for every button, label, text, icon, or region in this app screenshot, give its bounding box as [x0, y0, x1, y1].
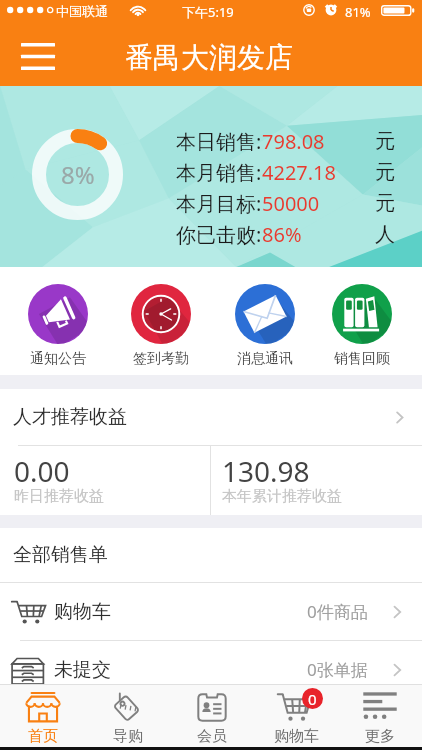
staticText: 元 — [375, 160, 395, 185]
staticText: 全部销售单 — [13, 543, 108, 567]
button[interactable]: 首页 — [0, 685, 85, 747]
staticText: 8% — [61, 158, 95, 191]
staticText: 番禺大润发店 — [125, 40, 293, 75]
staticText: 50000 — [262, 190, 320, 217]
button[interactable]: 销售回顾 — [318, 284, 406, 368]
staticText: 本日销售: — [176, 128, 262, 155]
button[interactable]: 更多 — [338, 685, 422, 747]
staticText: 本月销售: — [176, 159, 262, 186]
staticText: 本年累计推荐收益 — [222, 487, 342, 506]
staticText: 0件商品 — [307, 600, 368, 623]
staticText: 本月目标: — [176, 190, 262, 217]
button[interactable]: 导购 — [85, 685, 170, 747]
staticText: 首页 — [28, 727, 58, 746]
staticText: 消息通讯 — [237, 350, 293, 368]
button[interactable]: 购物车 — [0, 583, 422, 640]
staticText: 元 — [375, 191, 395, 216]
staticText: 798.08 — [262, 128, 325, 155]
staticText: 更多 — [365, 727, 395, 746]
staticText: 下午5:19 — [182, 3, 234, 21]
staticText: 购物车 — [274, 727, 319, 746]
button[interactable]: Menu — [3, 26, 73, 80]
staticText: 元 — [375, 129, 395, 154]
staticText: 昨日推荐收益 — [14, 487, 104, 506]
staticText: 通知公告 — [30, 350, 86, 368]
button[interactable]: 签到考勤 — [117, 284, 205, 368]
staticText: 销售回顾 — [334, 350, 390, 368]
staticText: 你已击败: — [176, 221, 262, 248]
button[interactable]: 通知公告 — [14, 284, 102, 368]
staticText: 导购 — [113, 727, 143, 746]
staticText: 人才推荐收益 — [13, 405, 127, 429]
staticText: 81% — [345, 3, 371, 21]
button[interactable]: 未提交 — [0, 641, 422, 698]
staticText: 未提交 — [54, 658, 111, 682]
staticText: 86% — [262, 221, 302, 248]
staticText: 签到考勤 — [133, 350, 189, 368]
staticText: 0.00 — [14, 452, 70, 490]
staticText: 中国联通 — [56, 3, 108, 19]
button[interactable]: 0 — [254, 685, 338, 747]
staticText: 4227.18 — [262, 159, 336, 186]
button[interactable]: 消息通讯 — [221, 284, 309, 368]
button[interactable]: 人才推荐收益 — [0, 389, 422, 445]
staticText: 0张单据 — [307, 658, 368, 681]
staticText: 会员 — [197, 727, 227, 746]
staticText: 130.98 — [222, 452, 310, 490]
button[interactable]: 会员 — [170, 685, 254, 747]
staticText: 0 — [308, 689, 317, 709]
staticText: 购物车 — [54, 600, 111, 624]
staticText: 人 — [375, 222, 395, 247]
